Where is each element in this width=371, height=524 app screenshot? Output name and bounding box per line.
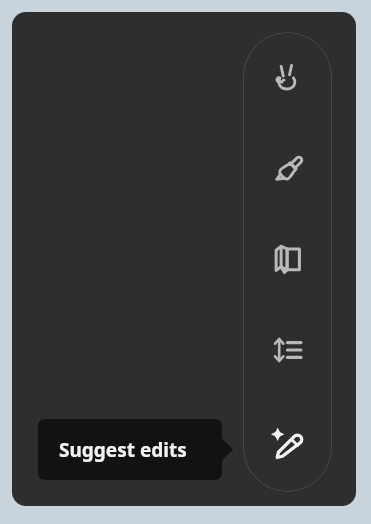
button[interactable]: Line spacing (260, 322, 316, 378)
staticText: Suggest edits (59, 437, 187, 463)
button[interactable]: Reactions (260, 49, 316, 105)
button[interactable]: Dictionary (260, 231, 316, 287)
button[interactable]: Suggest edits (260, 415, 316, 471)
button[interactable]: Suggest edits (38, 419, 233, 480)
button[interactable]: Formatting (260, 140, 316, 196)
